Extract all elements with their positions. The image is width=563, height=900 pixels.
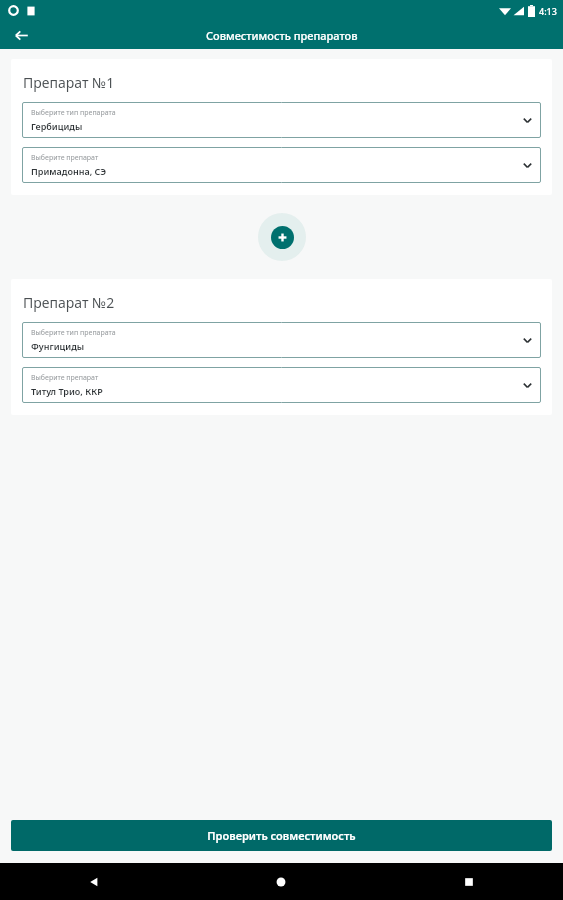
staticText: Совместимость препаратов	[206, 28, 358, 43]
button[interactable]: Выберите препарат	[22, 147, 541, 183]
button[interactable]: Выберите тип препарата	[22, 102, 541, 138]
staticText: Выберите тип препарата	[31, 108, 116, 118]
staticText: 4:13	[539, 5, 557, 17]
staticText: Гербициды	[31, 120, 83, 132]
button[interactable]: Back	[6, 21, 36, 49]
staticText: Титул Трио, ККР	[31, 385, 103, 397]
button[interactable]: Back	[0, 863, 187, 900]
staticText: Выберите препарат	[31, 373, 99, 383]
staticText: Примадонна, СЭ	[31, 165, 107, 177]
staticText: Проверить совместимость	[207, 828, 356, 843]
button[interactable]: Home	[187, 863, 375, 900]
staticText: Препарат №1	[23, 73, 115, 92]
button[interactable]: Выберите тип препарата	[22, 322, 541, 358]
button[interactable]: Recents	[375, 863, 563, 900]
staticText: Выберите тип препарата	[31, 328, 116, 338]
staticText: Препарат №2	[23, 293, 115, 312]
staticText: Фунгициды	[31, 340, 85, 352]
button[interactable]: Проверить совместимость	[11, 820, 552, 851]
button[interactable]: Add drug	[258, 213, 306, 261]
button[interactable]: Выберите препарат	[22, 367, 541, 403]
staticText: Выберите препарат	[31, 153, 99, 163]
